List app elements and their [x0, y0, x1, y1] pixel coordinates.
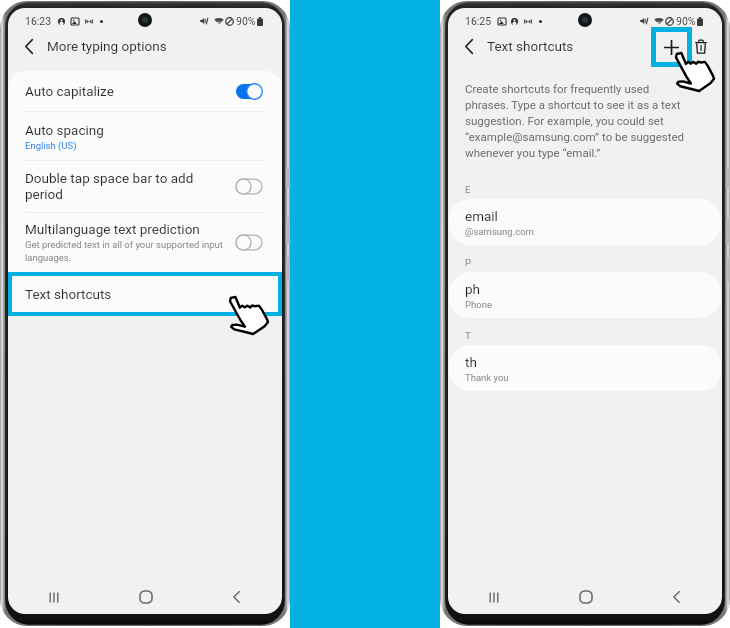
staticText: English (US) [25, 140, 77, 151]
button[interactable]: Navigate up [458, 35, 480, 57]
staticText: Phone [465, 299, 492, 310]
button[interactable]: Home [100, 580, 191, 614]
staticText: Create shortcuts for frequently used phr… [465, 82, 687, 160]
staticText: Thank you [465, 372, 509, 383]
button[interactable]: Back [191, 580, 282, 614]
staticText: 90% [676, 15, 696, 27]
button[interactable]: th [449, 345, 721, 391]
staticText: Text shortcuts [487, 38, 574, 54]
button[interactable]: email [449, 199, 721, 245]
button[interactable]: Off [236, 234, 262, 251]
button[interactable]: Auto spacing [8, 112, 282, 160]
staticText: @samsung.com [465, 226, 534, 237]
staticText: Double tap space bar to add period [25, 170, 226, 203]
staticText: 16:25 [465, 15, 492, 27]
staticText: Text shortcuts [25, 286, 112, 302]
staticText: P [465, 257, 471, 268]
staticText: 90% [236, 15, 256, 27]
staticText: th [465, 354, 477, 370]
staticText: More typing options [47, 38, 167, 54]
button[interactable]: Multilanguage text prediction [8, 213, 282, 272]
button[interactable]: Delete [691, 36, 711, 56]
staticText: Multilanguage text prediction [25, 221, 200, 237]
staticText: Auto capitalize [25, 83, 114, 99]
staticText: T [465, 330, 471, 341]
staticText: email [465, 208, 498, 224]
button[interactable]: Recent apps [8, 580, 100, 614]
button[interactable]: Text shortcuts [12, 276, 278, 312]
button[interactable]: Navigate up [18, 35, 40, 57]
staticText: 16:23 [25, 15, 52, 27]
staticText: Auto spacing [25, 122, 104, 138]
button[interactable]: Back [631, 580, 722, 614]
staticText: E [465, 184, 471, 195]
button[interactable]: ph [449, 272, 721, 318]
button[interactable]: On [236, 83, 262, 100]
button[interactable]: Recent apps [448, 580, 540, 614]
button[interactable]: Double tap space bar to add period [8, 161, 282, 212]
staticText: Get predicted text in all of your suppor… [25, 239, 226, 264]
button[interactable]: Add shortcut [656, 32, 687, 62]
staticText: ph [465, 281, 481, 297]
button[interactable]: Off [236, 178, 262, 195]
button[interactable]: Auto capitalize [8, 71, 282, 111]
button[interactable]: Home [540, 580, 631, 614]
